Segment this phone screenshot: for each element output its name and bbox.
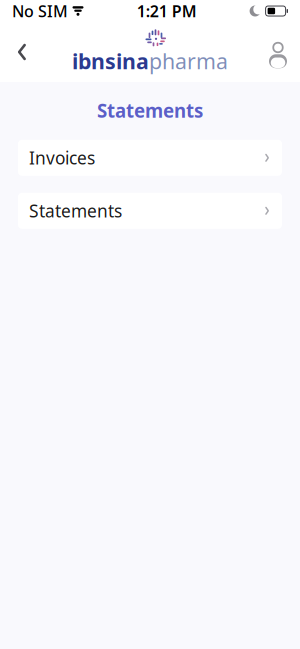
staticText: pharma xyxy=(149,47,228,75)
staticText: Invoices xyxy=(29,146,95,169)
staticText: Statements xyxy=(29,199,122,222)
staticText: No SIM xyxy=(12,0,68,22)
button[interactable]: Back xyxy=(0,28,44,76)
button[interactable]: Statements xyxy=(18,193,282,229)
staticText: ibnsina xyxy=(72,47,149,75)
staticText: 1:21 PM xyxy=(137,0,197,22)
staticText: Statements xyxy=(97,98,203,123)
button[interactable]: Invoices xyxy=(18,140,282,176)
button[interactable]: Profile xyxy=(256,28,300,76)
